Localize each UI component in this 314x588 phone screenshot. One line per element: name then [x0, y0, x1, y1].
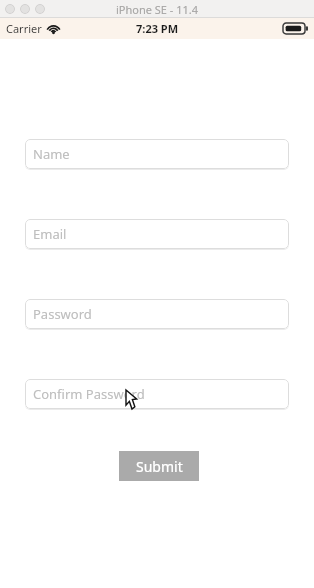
button[interactable]: Close window — [5, 4, 15, 14]
staticText: Password — [33, 305, 92, 323]
staticText: Confirm Password — [33, 385, 145, 403]
button[interactable]: Minimize window — [20, 4, 30, 14]
staticText: Email — [33, 225, 67, 243]
staticText: Carrier — [6, 21, 42, 36]
staticText: Submit — [136, 457, 183, 476]
button[interactable]: Zoom window — [35, 4, 45, 14]
button[interactable]: Confirm Password — [25, 379, 289, 409]
staticText: iPhone SE - 11.4 — [116, 2, 199, 17]
button[interactable]: Name — [25, 139, 289, 169]
staticText: Name — [33, 145, 70, 163]
button[interactable]: Password — [25, 299, 289, 329]
button[interactable]: Email — [25, 219, 289, 249]
button[interactable]: Submit — [119, 451, 199, 481]
staticText: 7:23 PM — [136, 21, 179, 36]
